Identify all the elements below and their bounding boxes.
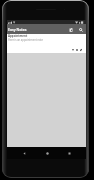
staticText: Easy Notes — [8, 27, 27, 32]
button[interactable]: Back — [18, 147, 30, 159]
button[interactable]: Saved notes — [66, 25, 75, 34]
staticText: Here is an appointment note — [8, 38, 43, 42]
button[interactable]: Home — [41, 147, 53, 159]
button[interactable]: Appointment — [7, 34, 86, 53]
staticText: Appointment — [8, 34, 28, 38]
button[interactable]: Recents — [63, 147, 75, 159]
button[interactable]: Search — [76, 25, 85, 34]
